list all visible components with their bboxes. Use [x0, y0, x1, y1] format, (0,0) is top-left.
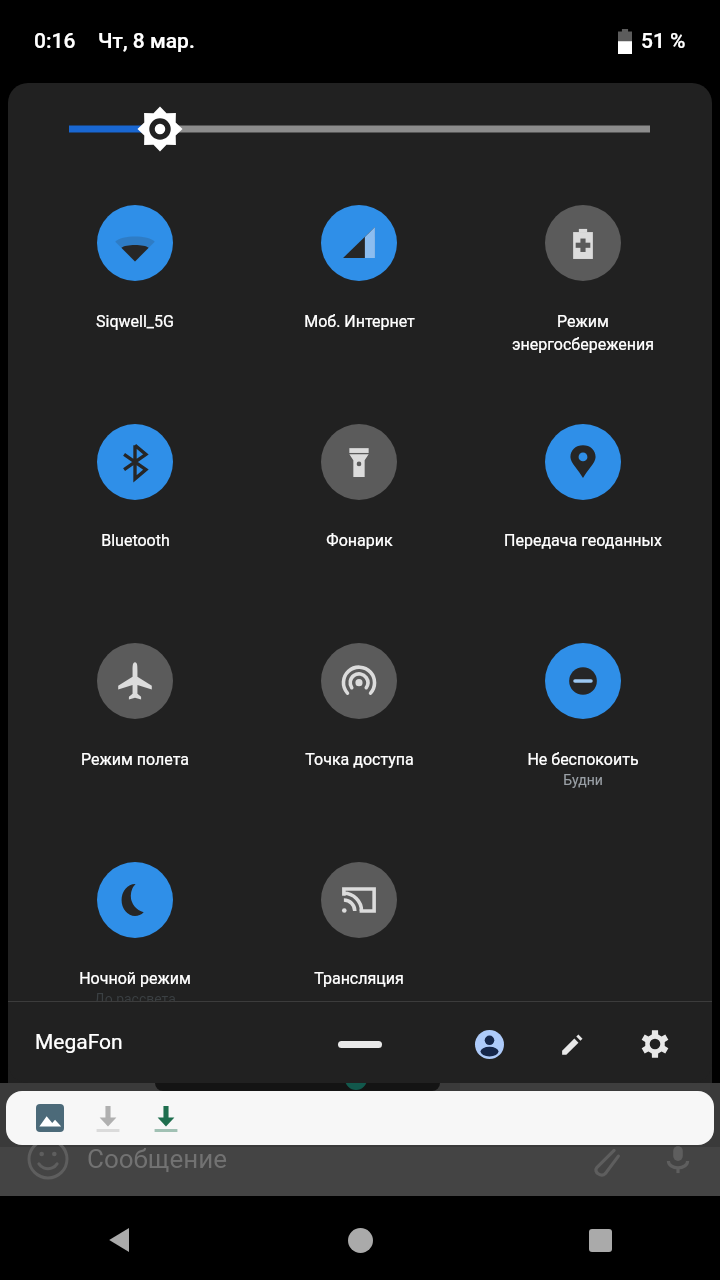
button[interactable]: Bluetooth	[23, 384, 247, 584]
staticText: Точка доступа	[305, 750, 414, 769]
staticText: Режим полета	[81, 750, 189, 769]
button[interactable]: Моб. Интернет	[247, 165, 471, 365]
button[interactable]: Image	[28, 1096, 72, 1140]
staticText: Bluetooth	[101, 531, 170, 550]
button[interactable]: Collapse	[328, 1012, 392, 1076]
button[interactable]: Siqwell_5G	[23, 165, 247, 365]
staticText: Передача геоданных	[504, 531, 662, 550]
button[interactable]: Download	[86, 1096, 130, 1140]
staticText: Трансляция	[314, 969, 404, 988]
button[interactable]: Точка доступа	[247, 603, 471, 803]
button[interactable]: Трансляция	[247, 822, 471, 1022]
button[interactable]: Settings	[627, 1016, 683, 1072]
button[interactable]: Не беспокоить	[471, 603, 695, 803]
staticText: Не беспокоить	[527, 750, 639, 769]
staticText: Чт, 8 мар.	[98, 29, 195, 54]
button[interactable]: Передача геоданных	[471, 384, 695, 584]
staticText: 0:16	[34, 29, 76, 54]
staticText: До рассвета	[94, 991, 176, 1007]
staticText: Сообщение	[87, 1144, 227, 1174]
button[interactable]: Режим энергосбережения	[471, 165, 695, 365]
staticText: Ночной режим	[79, 969, 191, 988]
button[interactable]: Recents	[480, 1200, 720, 1280]
staticText: MegaFon	[35, 1030, 123, 1055]
button[interactable]: Download file	[144, 1096, 188, 1140]
staticText: 51 %	[641, 29, 686, 54]
staticText: Siqwell_5G	[96, 312, 174, 331]
button[interactable]: Фонарик	[247, 384, 471, 584]
staticText: Режим энергосбережения	[512, 312, 654, 354]
button[interactable]: Edit	[544, 1016, 600, 1072]
button[interactable]: Ночной режим	[23, 822, 247, 1022]
button[interactable]: Режим полета	[23, 603, 247, 803]
staticText: Моб. Интернет	[304, 312, 415, 331]
button[interactable]: Back	[0, 1200, 240, 1280]
button[interactable]	[8, 104, 712, 154]
button[interactable]: Home	[240, 1200, 480, 1280]
button[interactable]: User	[461, 1016, 517, 1072]
staticText: Будни	[563, 772, 603, 788]
staticText: Фонарик	[326, 531, 393, 550]
